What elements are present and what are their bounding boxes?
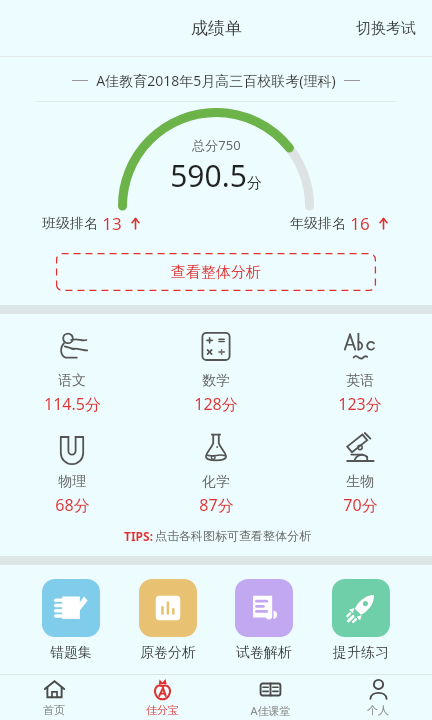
staticText: 班级排名	[42, 215, 98, 233]
staticText: 个人	[367, 703, 389, 717]
button[interactable]: 生物	[288, 427, 432, 518]
staticText: 英语	[346, 372, 374, 390]
staticText: 化学	[202, 473, 230, 491]
staticText: 查看整体分析	[171, 263, 261, 282]
button[interactable]: 切换考试	[340, 7, 432, 50]
staticText: 物理	[58, 473, 86, 491]
button[interactable]: A佳课堂	[216, 675, 324, 720]
staticText: 70分	[343, 494, 378, 516]
button[interactable]: 语文	[0, 326, 144, 417]
staticText: 错题集	[50, 644, 92, 662]
staticText: 13	[102, 212, 122, 235]
button[interactable]: 班级排名	[42, 212, 142, 235]
button[interactable]: 查看整体分析	[56, 253, 376, 291]
staticText: 128分	[194, 393, 238, 415]
staticText: 语文	[58, 372, 86, 390]
button[interactable]: 英语	[288, 326, 432, 417]
staticText: 佳分宝	[146, 703, 179, 717]
staticText: 16	[350, 212, 370, 235]
staticText: 分	[247, 174, 262, 193]
button[interactable]: 个人	[324, 675, 432, 720]
staticText: 点击各科图标可查看整体分析	[155, 528, 311, 543]
button[interactable]: 原卷分析	[135, 579, 201, 662]
button[interactable]: 物理	[0, 427, 144, 518]
staticText: 数学	[202, 372, 230, 390]
staticText: 87分	[199, 494, 234, 516]
staticText: 生物	[346, 473, 374, 491]
staticText: 总分750	[192, 136, 241, 154]
staticText: 590.5	[170, 155, 247, 196]
staticText: 114.5分	[44, 393, 101, 415]
staticText: 试卷解析	[236, 644, 292, 662]
staticText: TIPS:	[122, 528, 155, 544]
button[interactable]: 化学	[144, 427, 288, 518]
staticText: 68分	[55, 494, 90, 516]
other: Rank up	[377, 217, 390, 230]
staticText: 首页	[43, 703, 65, 717]
other: Rank up	[129, 217, 142, 230]
staticText: 提升练习	[333, 644, 389, 662]
staticText: 成绩单	[191, 18, 242, 39]
button[interactable]: 提升练习	[328, 579, 394, 662]
staticText: 123分	[338, 393, 382, 415]
staticText: 年级排名	[290, 215, 346, 233]
button[interactable]: 年级排名	[290, 212, 390, 235]
staticText: A佳教育2018年5月高三百校联考(理科)	[96, 71, 336, 90]
staticText: 原卷分析	[140, 644, 196, 662]
button[interactable]: 试卷解析	[231, 579, 297, 662]
button[interactable]: 错题集	[38, 579, 104, 662]
button[interactable]: 数学	[144, 326, 288, 417]
button[interactable]: 成绩单	[183, 10, 250, 47]
button[interactable]: 首页	[0, 675, 108, 720]
staticText: A佳课堂	[250, 703, 291, 718]
staticText: 切换考试	[356, 19, 416, 38]
button[interactable]: 佳分宝	[108, 675, 216, 720]
